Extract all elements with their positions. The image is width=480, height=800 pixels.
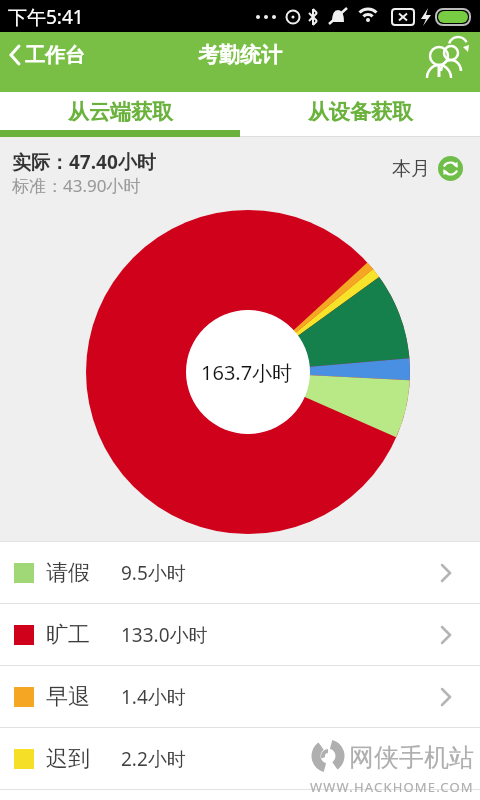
staticText: 从设备获取 — [308, 99, 413, 125]
button[interactable]: 旷工 — [0, 604, 480, 666]
staticText: 9.5小时 — [121, 560, 186, 586]
staticText: 标准：43.90小时 — [12, 174, 141, 197]
button[interactable]: 请假 — [0, 542, 480, 604]
button[interactable]: 从设备获取 — [240, 89, 480, 134]
staticText: 网侠手机站 — [349, 742, 474, 773]
staticText: 1.4小时 — [121, 684, 186, 710]
staticText: WWW.HACKHOME.COM — [310, 778, 474, 796]
staticText: 163.7小时 — [201, 359, 293, 386]
staticText: 133.0小时 — [121, 622, 208, 648]
button[interactable]: 从云端获取 — [0, 89, 240, 134]
staticText: 工作台 — [25, 43, 85, 68]
staticText: 本月 — [392, 157, 430, 181]
button[interactable]: 工作台 — [0, 25, 85, 85]
staticText: 实际：47.40小时 — [12, 149, 156, 175]
staticText: 下午5:41 — [8, 4, 84, 30]
staticText: 早退 — [46, 683, 90, 711]
staticText: 旷工 — [46, 621, 90, 649]
button[interactable]: 早退 — [0, 666, 480, 728]
button[interactable]: 迟到 — [0, 728, 480, 790]
staticText: 从云端获取 — [68, 99, 173, 125]
staticText: 考勤统计 — [198, 42, 282, 68]
staticText: 请假 — [46, 559, 90, 587]
staticText: 迟到 — [46, 745, 90, 773]
button[interactable] — [422, 32, 480, 92]
staticText: 2.2小时 — [121, 746, 186, 772]
button[interactable]: 本月 — [392, 156, 463, 181]
